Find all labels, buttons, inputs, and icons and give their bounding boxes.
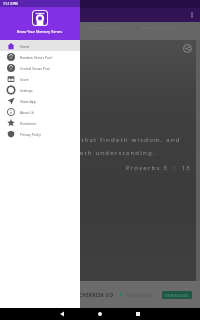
staticText: Settings [20, 88, 33, 92]
button[interactable]: Privacy Policy [0, 128, 80, 139]
button[interactable]: Settings [0, 84, 80, 95]
staticText: Proverbs 3 : 13 [10, 164, 191, 172]
button[interactable]: Home [0, 40, 80, 51]
staticText: Random Verses Pool [20, 55, 52, 59]
button[interactable]: About Us [0, 106, 80, 117]
staticText: Privacy Policy [20, 132, 41, 136]
staticText: Disclaimer [20, 121, 37, 125]
staticText: Central Verses Pool [20, 66, 50, 70]
button[interactable]: Random Verses Pool [0, 51, 80, 62]
staticText: About Us [20, 110, 35, 114]
button[interactable]: Central Verses Pool [0, 62, 80, 73]
button[interactable]: Sequential Book [70, 22, 140, 33]
staticText: DOWNLOAD [165, 293, 189, 298]
button[interactable]: DOWNLOAD [162, 291, 192, 299]
staticText: Share App [20, 99, 36, 103]
button[interactable]: Share [183, 44, 192, 53]
staticText: Home [20, 44, 30, 48]
button[interactable]: Score [0, 73, 80, 84]
staticText: 11:13 PM [3, 1, 18, 6]
button[interactable]: More options [187, 10, 197, 20]
button[interactable]: Disclaimer [0, 117, 80, 128]
staticText: Google Play [126, 292, 152, 298]
staticText: Score [20, 77, 29, 81]
staticText: Happy is the man that findeth wisdom, an… [10, 136, 191, 157]
button[interactable]: Share App [0, 95, 80, 106]
staticText: CHERRISK GO [79, 292, 114, 298]
staticText: Know Your Memory Verses [17, 29, 63, 34]
